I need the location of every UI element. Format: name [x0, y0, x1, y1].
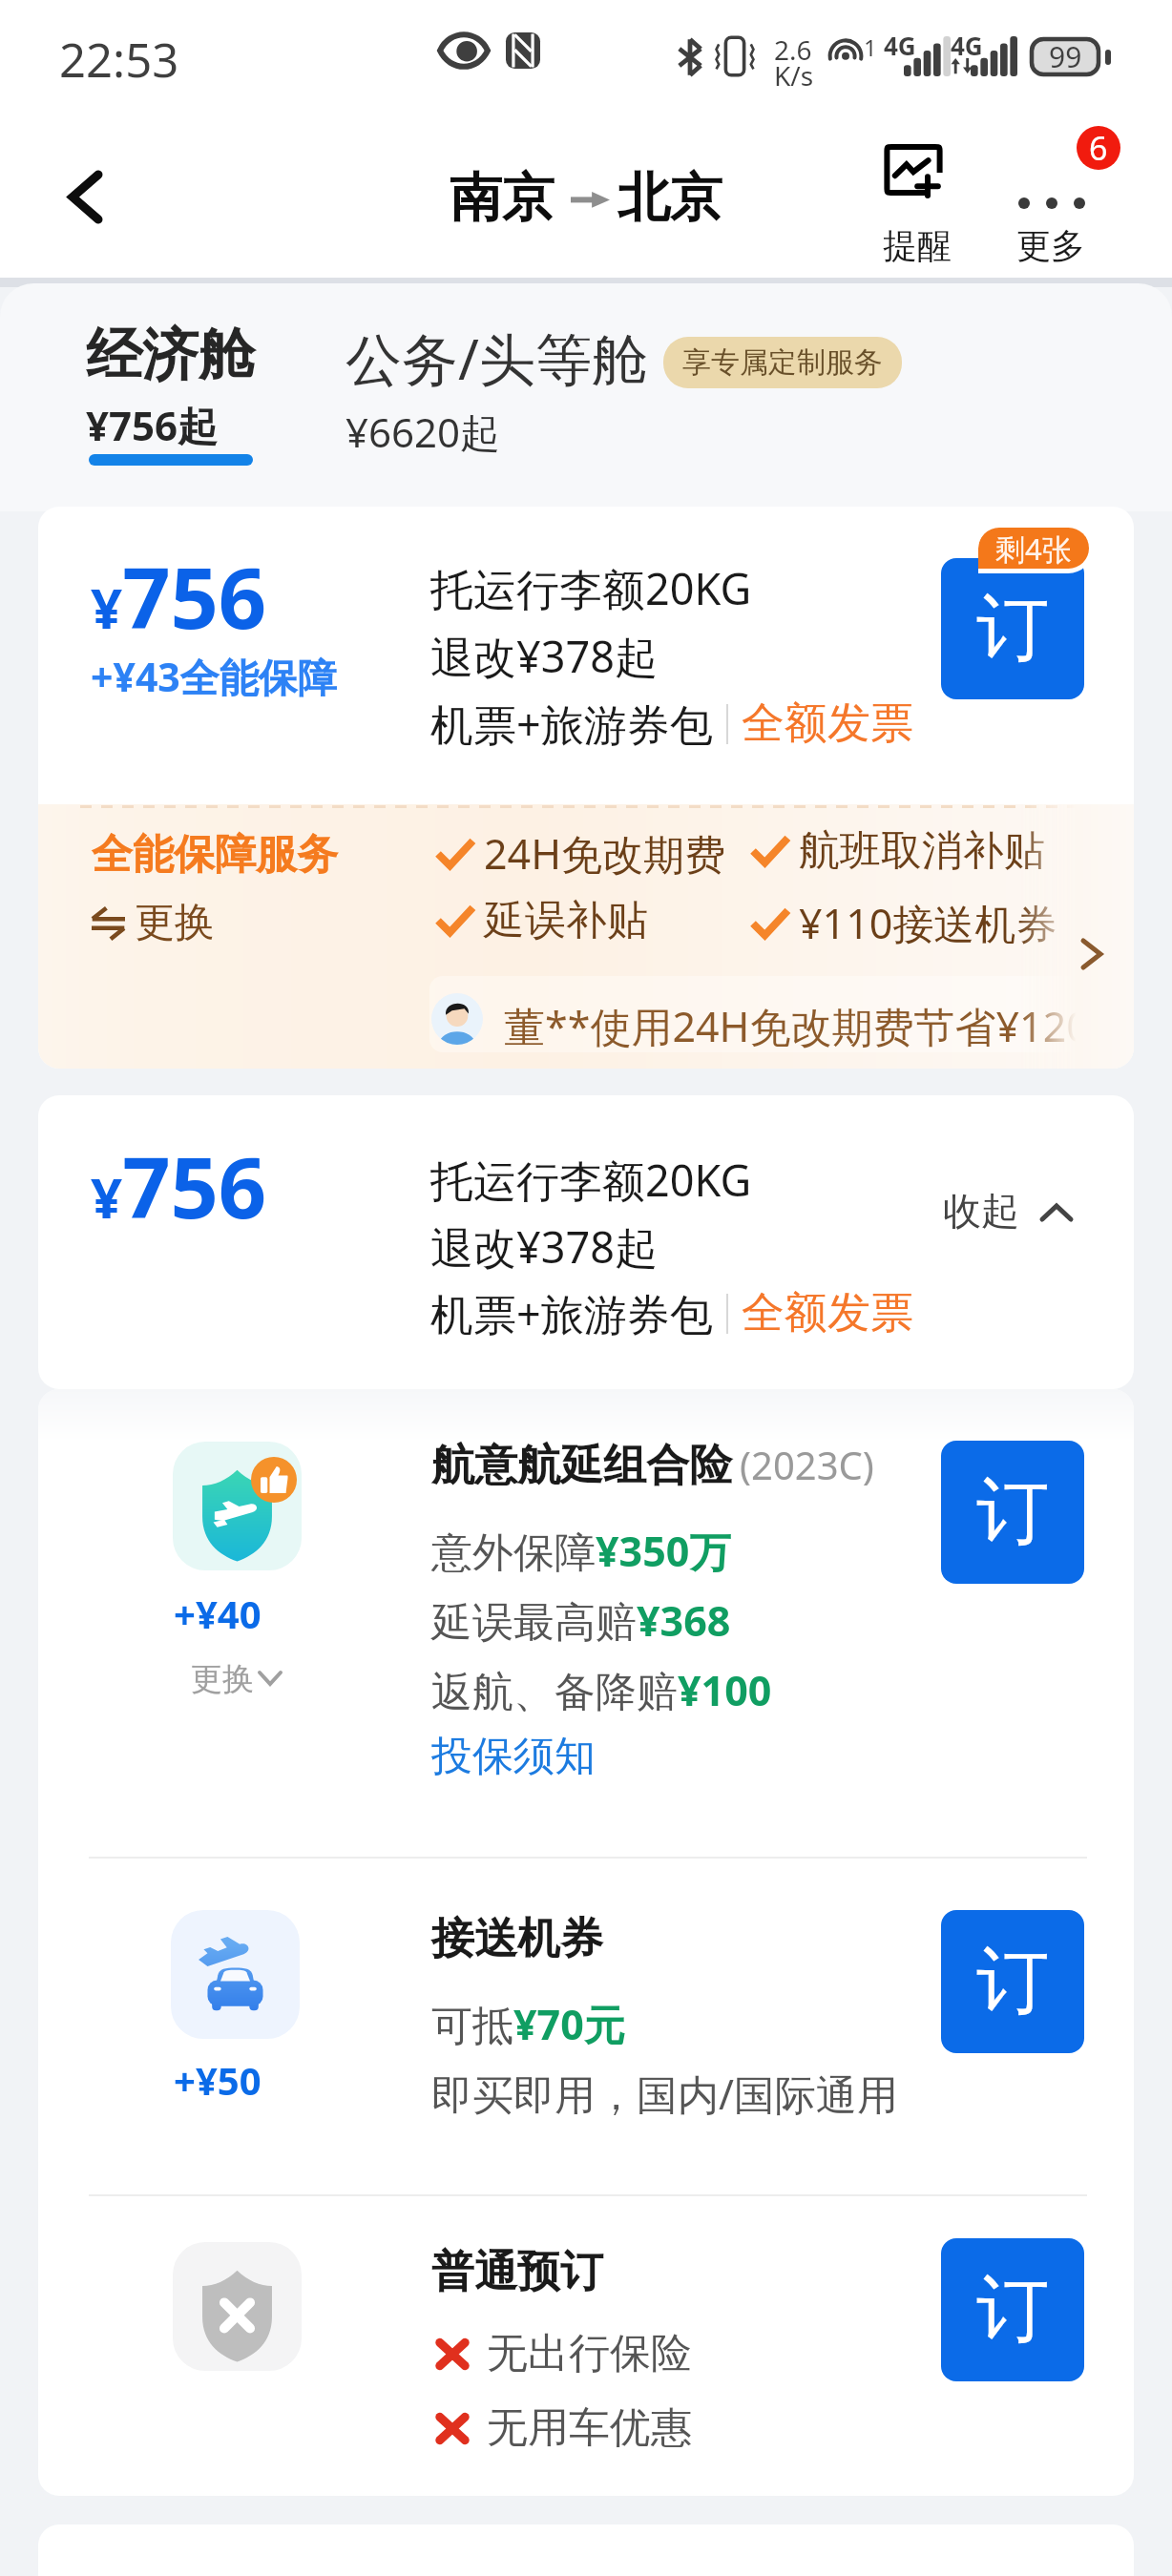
- staticText: 航意航延组合险: [431, 1439, 732, 1493]
- staticText: 2.6 K/s: [774, 31, 814, 93]
- staticText: 1: [864, 31, 877, 63]
- staticText: 航班取消补贴: [799, 825, 1045, 877]
- staticText: 4G: [884, 29, 916, 62]
- staticText: 托运行李额20KG: [430, 559, 752, 617]
- staticText: 99: [1049, 37, 1082, 76]
- staticText: 订: [976, 1936, 1049, 2027]
- staticText: ¥110接送机券: [799, 895, 1057, 951]
- button[interactable]: 更多: [994, 129, 1105, 253]
- staticText: 机票+旅游券包: [430, 1284, 713, 1342]
- button[interactable]: 经济舱: [86, 320, 255, 452]
- staticText: 退改¥378起: [430, 627, 658, 685]
- staticText: 南京: [450, 165, 555, 231]
- staticText: 即买即用，国内/国际通用: [431, 2066, 898, 2122]
- staticText: 剩4张: [995, 529, 1072, 569]
- staticText: ¥756: [91, 1129, 267, 1243]
- staticText: 全额发票: [742, 696, 913, 751]
- button[interactable]: 提醒: [859, 129, 970, 253]
- staticText: 更换: [191, 1659, 254, 1699]
- staticText: (2023C): [740, 1439, 874, 1490]
- button[interactable]: 订: [941, 558, 1084, 699]
- staticText: +¥40: [174, 1588, 262, 1639]
- button[interactable]: 公务/头等舱: [345, 320, 902, 459]
- staticText: 返航、备降赔¥100: [431, 1662, 772, 1718]
- staticText: 24H免改期费: [484, 825, 726, 882]
- staticText: 更换: [135, 898, 215, 948]
- staticText: ¥756: [91, 539, 267, 654]
- staticText: 接送机券: [431, 1912, 603, 1966]
- staticText: 无用车优惠: [487, 2402, 692, 2454]
- staticText: 可抵¥70元: [431, 1996, 625, 2052]
- staticText: 意外保障¥350万: [431, 1523, 731, 1579]
- staticText: 托运行李额20KG: [430, 1151, 752, 1209]
- staticText: 无出行保险: [487, 2328, 692, 2379]
- staticText: 延误最高赔¥368: [431, 1592, 731, 1649]
- button[interactable]: 订: [941, 2238, 1084, 2381]
- button[interactable]: 订: [941, 1910, 1084, 2053]
- staticText: 公务/头等舱: [345, 320, 648, 397]
- staticText: 延误补贴: [484, 895, 648, 946]
- staticText: 订: [976, 1466, 1049, 1558]
- staticText: 机票+旅游券包: [430, 695, 713, 753]
- staticText: ¥756起: [86, 398, 219, 452]
- button[interactable]: 订: [941, 1441, 1084, 1584]
- staticText: 更多: [1016, 224, 1085, 267]
- staticText: 普通预订: [431, 2245, 603, 2299]
- staticText: 22:53: [59, 28, 179, 92]
- staticText: 提醒: [883, 224, 952, 267]
- staticText: 订: [976, 583, 1049, 675]
- staticText: ¥6620起: [345, 405, 501, 459]
- staticText: 北京: [617, 165, 722, 231]
- staticText: 董**使用24H免改期费节省¥120: [504, 998, 1090, 1054]
- button[interactable]: 收起: [943, 1187, 1073, 1235]
- button[interactable]: Back: [40, 154, 126, 239]
- button[interactable]: 更换: [92, 898, 215, 948]
- staticText: 全能保障服务: [92, 829, 338, 881]
- staticText: 订: [976, 2264, 1049, 2356]
- staticText: 投保须知: [431, 1731, 596, 1782]
- staticText: 退改¥378起: [430, 1217, 658, 1276]
- staticText: 全额发票: [742, 1286, 913, 1340]
- staticText: 经济舱: [86, 320, 255, 390]
- staticText: +¥50: [174, 2054, 262, 2106]
- staticText: +¥43全能保障: [91, 650, 337, 703]
- staticText: 6: [1089, 126, 1108, 170]
- staticText: 享专属定制服务: [682, 344, 883, 381]
- button[interactable]: 更换: [191, 1659, 283, 1699]
- staticText: 收起: [943, 1187, 1019, 1235]
- staticText: 4G: [951, 29, 983, 62]
